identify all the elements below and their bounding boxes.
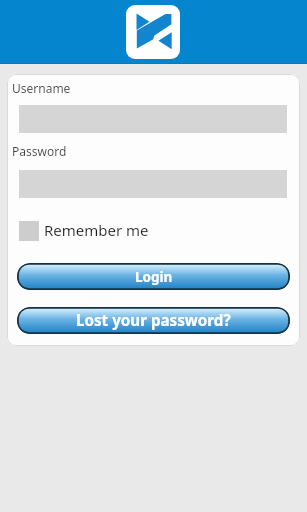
staticText: Password [12,143,67,159]
staticText: Lost your password? [76,310,231,331]
button[interactable]: Lost your password? [17,307,290,334]
staticText: Login [135,268,173,286]
staticText: Username [12,80,71,96]
staticText: Remember me [44,220,149,240]
button[interactable]: Login [17,263,290,290]
